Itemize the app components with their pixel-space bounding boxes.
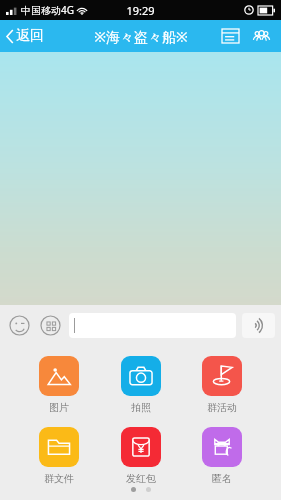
staticText: 匿名: [212, 472, 232, 485]
button[interactable]: 匿名: [200, 425, 244, 487]
button[interactable]: 群文件: [37, 425, 81, 487]
staticText: ※海々盗々船※: [94, 27, 188, 46]
button[interactable]: 图片: [37, 354, 81, 416]
button[interactable]: 返回: [0, 23, 52, 49]
staticText: 19:29: [126, 3, 155, 18]
button[interactable]: 群活动: [200, 354, 244, 416]
button[interactable]: 拍照: [119, 354, 163, 416]
staticText: 图片: [49, 401, 69, 414]
staticText: 群文件: [44, 472, 74, 485]
staticText: 中国移动4G: [21, 3, 74, 17]
staticText: 拍照: [131, 401, 151, 414]
button[interactable]: Emoji: [6, 312, 33, 339]
button[interactable]: Group members: [248, 24, 275, 48]
staticText: 发红包: [126, 472, 156, 485]
button[interactable]: 发红包: [119, 425, 163, 487]
staticText: 群活动: [207, 401, 237, 414]
button[interactable]: Stickers: [37, 312, 64, 339]
button[interactable]: Chat records: [217, 24, 244, 48]
button[interactable]: Voice message: [242, 313, 275, 338]
button[interactable]: [69, 313, 236, 338]
staticText: 返回: [16, 27, 44, 45]
